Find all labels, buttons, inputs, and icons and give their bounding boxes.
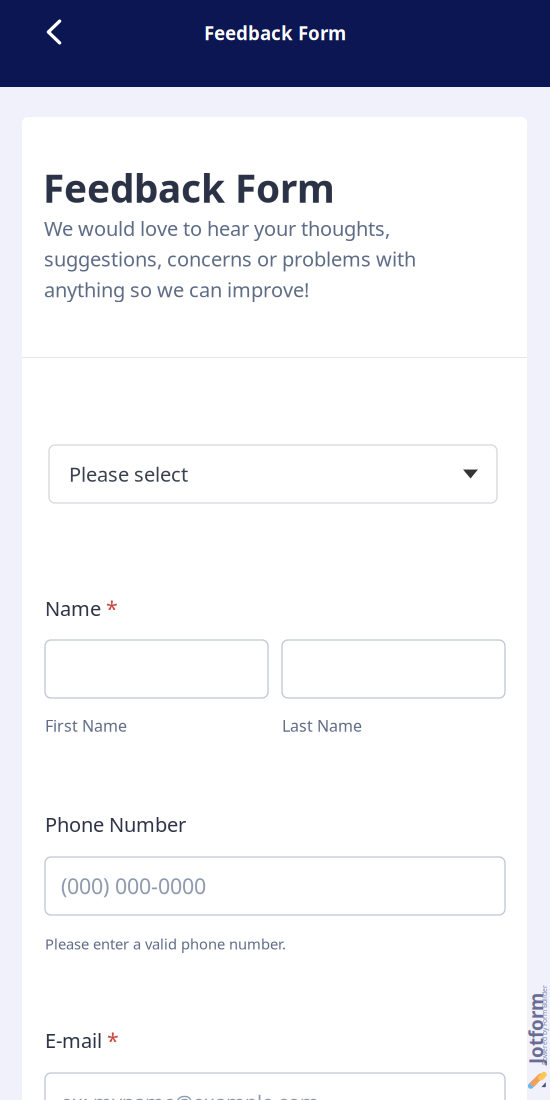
staticText: Feedback Form xyxy=(204,21,346,45)
staticText: Feedback Form xyxy=(43,162,335,213)
staticText: Jotform xyxy=(507,1023,550,1047)
staticText: Last Name xyxy=(282,715,362,736)
staticText: First Name xyxy=(45,715,127,736)
staticText: We would love to hear your thoughts, sug… xyxy=(44,215,416,303)
staticText: Please enter a valid phone number. xyxy=(45,934,286,953)
staticText: Name xyxy=(45,595,101,621)
button[interactable]: Back xyxy=(31,9,77,55)
staticText: (000) 000-0000 xyxy=(61,872,206,900)
staticText: E-mail xyxy=(45,1027,102,1053)
staticText: * xyxy=(106,594,118,622)
staticText: Powered by Form Builder xyxy=(516,1033,550,1041)
button[interactable]: Jotform, Powered by Form Builder xyxy=(529,1003,550,1093)
staticText: Phone Number xyxy=(45,811,186,838)
staticText: ex: myname@example.com xyxy=(61,1089,319,1100)
staticText: Please select xyxy=(69,461,188,487)
button[interactable]: Please select xyxy=(49,445,497,503)
staticText: * xyxy=(107,1026,119,1054)
